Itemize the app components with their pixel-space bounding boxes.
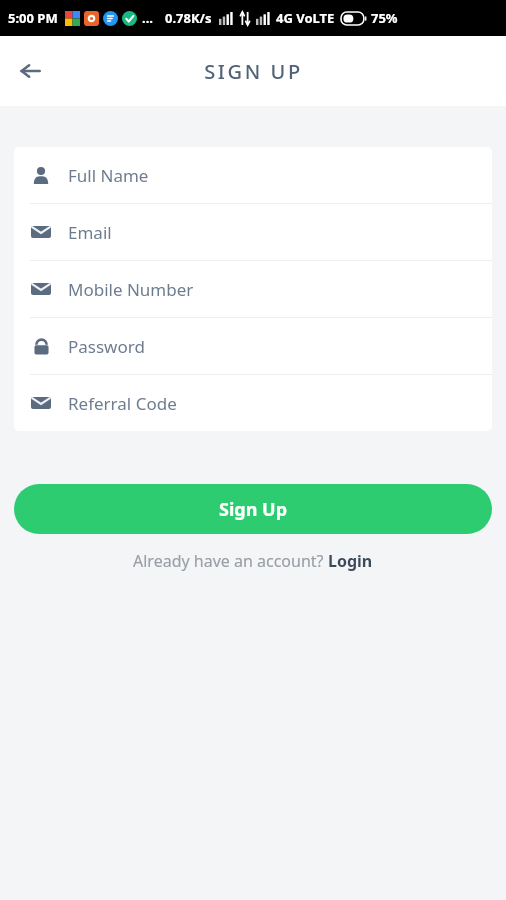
button[interactable]: Back — [6, 47, 54, 95]
staticText: Full Name — [68, 164, 149, 187]
staticText: 75% — [371, 9, 398, 27]
staticText: SIGN UP — [204, 58, 303, 85]
button[interactable]: Mobile Number — [14, 261, 492, 318]
button[interactable]: Email — [14, 204, 492, 261]
button[interactable]: Already have an account? — [127, 546, 379, 576]
button[interactable]: Password — [14, 318, 492, 375]
staticText: Sign Up — [219, 497, 288, 522]
button[interactable]: Full Name — [14, 147, 492, 204]
staticText: 0.78K/s — [165, 9, 212, 27]
staticText: 5:00 PM — [8, 9, 58, 27]
staticText: Mobile Number — [68, 278, 194, 301]
staticText: Already have an account? — [133, 550, 328, 572]
staticText: Password — [68, 335, 145, 358]
staticText: ... — [142, 9, 153, 27]
staticText: Login — [328, 550, 373, 572]
staticText: Email — [68, 221, 112, 244]
staticText: Referral Code — [68, 392, 177, 415]
staticText: 4G VoLTE — [276, 9, 335, 27]
button[interactable]: Referral Code — [14, 375, 492, 431]
button[interactable]: Sign Up — [14, 484, 492, 534]
